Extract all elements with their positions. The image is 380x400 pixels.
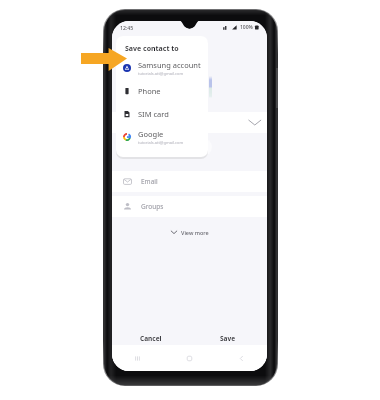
button[interactable]: Google bbox=[116, 125, 208, 148]
staticText: tutorials.att@gmail.com bbox=[138, 71, 184, 76]
button[interactable]: Cancel bbox=[112, 330, 189, 347]
staticText: Cancel bbox=[140, 334, 162, 343]
button[interactable]: Recent apps bbox=[112, 345, 163, 371]
staticText: View more bbox=[181, 229, 209, 236]
staticText: 12:45 bbox=[120, 24, 134, 31]
staticText: Phone bbox=[138, 86, 161, 96]
staticText: Groups bbox=[141, 202, 164, 211]
button[interactable]: Phone bbox=[116, 79, 208, 102]
staticText: 100% bbox=[240, 24, 253, 31]
button[interactable]: SIM card bbox=[116, 102, 208, 125]
button[interactable]: Email bbox=[112, 171, 267, 192]
staticText: tutorials.att@gmail.com bbox=[138, 140, 184, 145]
staticText: Samsung account bbox=[138, 60, 201, 70]
button[interactable]: Samsung account bbox=[116, 56, 208, 79]
staticText: Save bbox=[220, 334, 236, 343]
button[interactable]: Save bbox=[189, 330, 267, 347]
button[interactable]: View more bbox=[112, 223, 267, 241]
staticText: Google bbox=[138, 129, 164, 139]
button[interactable]: Groups bbox=[112, 196, 267, 217]
staticText: Email bbox=[141, 177, 158, 186]
staticText: SIM card bbox=[138, 109, 169, 119]
button[interactable]: Back bbox=[215, 345, 267, 371]
staticText: Save contact to bbox=[125, 44, 179, 54]
